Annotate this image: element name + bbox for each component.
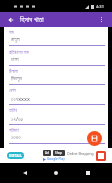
button[interactable]: নাম bbox=[4, 27, 108, 46]
staticText: ঢাকা bbox=[11, 57, 19, 63]
staticText: INSTALL bbox=[9, 154, 22, 158]
staticText: মিরপুর bbox=[11, 76, 22, 82]
staticText: 4:31 bbox=[96, 4, 104, 9]
staticText: প্রতিষ্ঠানের নাম bbox=[9, 49, 29, 55]
button[interactable]: পরিমাণ bbox=[4, 125, 108, 144]
button[interactable]: More options bbox=[96, 14, 107, 25]
staticText: রাহুল bbox=[11, 37, 20, 43]
staticText: ১০০০ bbox=[11, 135, 21, 141]
staticText: তারিখ bbox=[9, 108, 18, 113]
staticText: ফোন bbox=[9, 88, 16, 93]
button[interactable]: Recent apps bbox=[81, 166, 95, 180]
button[interactable]: Back bbox=[5, 14, 16, 25]
button[interactable]: ফোন bbox=[4, 85, 108, 105]
button[interactable]: Add entry bbox=[87, 131, 102, 146]
button[interactable]: Advertised app bbox=[96, 151, 106, 161]
staticText: Google Play bbox=[47, 157, 65, 161]
staticText: Shop bbox=[55, 151, 63, 155]
button[interactable]: Home bbox=[49, 166, 63, 180]
button[interactable]: Back bbox=[18, 166, 32, 180]
staticText: হিসাব খাতা bbox=[20, 15, 44, 25]
button[interactable]: প্রতিষ্ঠানের নাম bbox=[4, 46, 108, 66]
staticText: ১২/০৫ bbox=[11, 115, 24, 122]
staticText: পরিমাণ bbox=[9, 128, 19, 133]
button[interactable]: তারিখ bbox=[4, 105, 108, 125]
staticText: নাম bbox=[9, 30, 14, 35]
staticText: ঠিকানা bbox=[9, 69, 18, 74]
staticText: Online Shopping bbox=[67, 151, 94, 156]
button[interactable]: ঠিকানা bbox=[4, 66, 108, 85]
button[interactable]: মন্তব্য bbox=[4, 144, 108, 148]
staticText: ০১৭xxxx bbox=[11, 95, 30, 102]
staticText: Ad bbox=[45, 151, 49, 155]
button[interactable]: Install bbox=[7, 152, 24, 159]
